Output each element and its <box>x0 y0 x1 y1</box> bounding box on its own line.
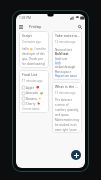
staticText: 🍎 <box>36 86 40 89</box>
button[interactable]: Search <box>76 23 83 30</box>
button[interactable]: Take notes with... <box>52 31 82 80</box>
staticText: Italic text <box>55 57 68 61</box>
staticText: Normal text <box>55 48 72 52</box>
staticText: 🍌 <box>38 97 42 100</box>
button[interactable]: Final List <box>19 70 49 113</box>
button[interactable]: What is the mat... <box>52 82 82 133</box>
staticText: strike through <box>55 65 76 69</box>
staticText: Script <box>22 33 32 38</box>
staticText: Final List <box>22 72 38 77</box>
staticText: Report an issue <box>55 74 77 78</box>
staticText: 13 minutes ago <box>55 91 76 95</box>
staticText: 🥑 <box>40 92 44 95</box>
staticText: 2 more items <box>22 107 40 111</box>
staticText: Banana <box>26 97 37 101</box>
staticText: 17 minutes ago <box>22 79 43 83</box>
staticText: What is the mat... <box>55 84 80 89</box>
staticText: Take notes with... <box>55 33 80 38</box>
staticText: Bold text <box>55 52 69 56</box>
staticText: Link <box>55 61 61 65</box>
staticText: 12 minutes ago <box>55 40 76 44</box>
staticText: 2 minutes ago <box>22 40 41 44</box>
staticText: 🍒 <box>37 102 41 105</box>
staticText: hello 👋, I am the developer of this app.… <box>22 47 47 65</box>
staticText: 1:03 PM <box>19 16 31 20</box>
button[interactable]: Menu <box>17 23 24 30</box>
button[interactable]: New note <box>71 150 81 160</box>
staticText: The abstract science of number, quantity… <box>55 98 80 131</box>
staticText: Cherry <box>26 102 36 106</box>
staticText: Monospace <box>55 70 72 74</box>
button[interactable]: Script <box>19 31 49 68</box>
staticText: Friday <box>29 24 42 30</box>
staticText: Avocado <box>26 91 39 95</box>
staticText: Apple <box>26 86 35 90</box>
